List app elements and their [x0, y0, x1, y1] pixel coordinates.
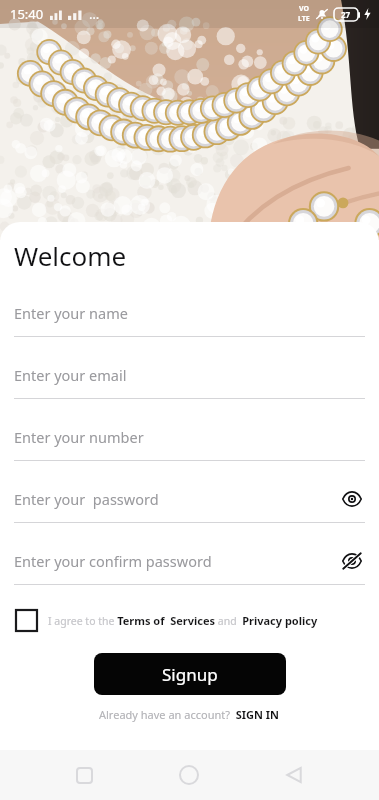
- staticText: 15:40: [10, 5, 44, 23]
- staticText: Welcome: [14, 238, 127, 273]
- button[interactable]: Home: [169, 755, 209, 795]
- staticText: LTE: [298, 14, 310, 24]
- button[interactable]: Hide password: [339, 548, 365, 574]
- button[interactable]: Agree to terms: [16, 610, 365, 631]
- button[interactable]: Recent apps: [64, 755, 104, 795]
- staticText: …: [89, 5, 100, 23]
- staticText: VO: [299, 4, 310, 14]
- staticText: I agree to the Terms of Services and Pri…: [48, 613, 318, 628]
- staticText: 27: [341, 9, 351, 20]
- staticText: Enter your confirm password: [14, 551, 212, 571]
- staticText: Enter your email: [14, 365, 127, 385]
- button[interactable]: Enter your name: [0, 290, 379, 352]
- button[interactable]: Agree to terms: [16, 610, 37, 631]
- button[interactable]: Back: [274, 755, 314, 795]
- staticText: Enter your number: [14, 427, 144, 447]
- button[interactable]: Enter your confirm password: [0, 538, 379, 600]
- button[interactable]: Enter your number: [0, 414, 379, 476]
- staticText: Already have an account? SIGN IN: [99, 707, 280, 722]
- button[interactable]: Enter your password: [0, 476, 379, 538]
- staticText: Signup: [162, 663, 218, 686]
- staticText: Enter your name: [14, 303, 128, 323]
- button[interactable]: Already have an account? SIGN IN: [99, 707, 280, 722]
- button[interactable]: Show password: [339, 486, 365, 512]
- staticText: Enter your password: [14, 489, 159, 509]
- button[interactable]: Enter your email: [0, 352, 379, 414]
- button[interactable]: Signup: [94, 653, 286, 695]
